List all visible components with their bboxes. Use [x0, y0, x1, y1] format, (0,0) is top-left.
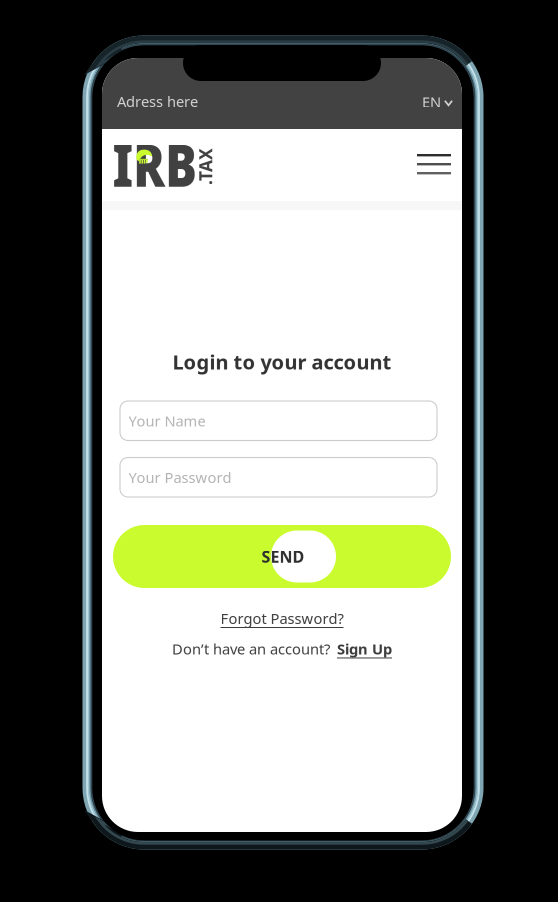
staticText: EN	[422, 92, 441, 111]
staticText: Login to your account	[172, 348, 391, 375]
button[interactable]: SEND	[113, 525, 451, 588]
staticText: Adress here	[117, 91, 198, 111]
staticText: Your Name	[128, 411, 205, 430]
button[interactable]: Open menu	[413, 150, 455, 178]
button[interactable]: Sign Up	[337, 637, 392, 660]
button[interactable]: Your Password	[120, 457, 437, 497]
button[interactable]: Forgot Password?	[220, 606, 343, 630]
staticText: Your Password	[128, 467, 231, 487]
button[interactable]: EN	[420, 88, 455, 115]
button[interactable]: Your Name	[120, 401, 437, 440]
staticText: Forgot Password?	[220, 608, 343, 628]
staticText: .TAX	[187, 155, 224, 178]
staticText: Don’t have an account?	[172, 639, 330, 658]
staticText: Sign Up	[337, 639, 392, 658]
staticText: SEND	[261, 546, 304, 567]
staticText: IRB	[112, 125, 218, 203]
